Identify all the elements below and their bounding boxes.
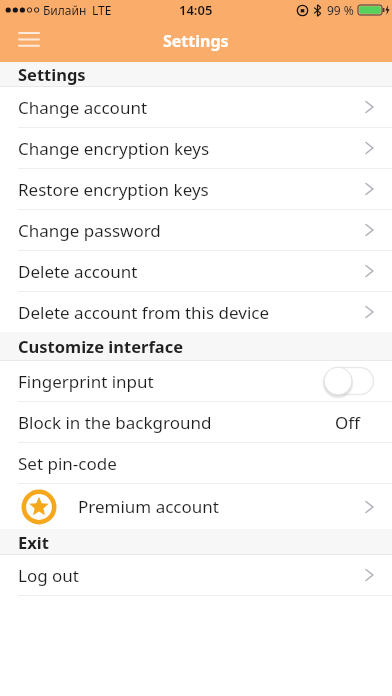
staticText: Fingerprint input [18,370,154,393]
button[interactable]: Change password [0,210,392,250]
button[interactable] [0,20,56,62]
staticText: Restore encryption keys [18,178,209,201]
staticText: Билайн [43,2,87,18]
button[interactable]: Change account [0,87,392,127]
button[interactable]: Log out [0,555,392,595]
button[interactable]: Restore encryption keys [0,169,392,209]
staticText: 14:05 [179,1,213,19]
staticText: Settings [18,63,86,85]
staticText: Customize interface [18,335,184,357]
button[interactable]: Premium account [0,484,392,529]
staticText: Change account [18,96,148,119]
staticText: Set pin-code [18,452,117,475]
staticText: Delete account [18,260,138,283]
staticText: 99 % [327,2,354,18]
staticText: Settings [163,30,229,52]
staticText: Change encryption keys [18,137,210,160]
staticText: Delete account from this device [18,301,270,324]
staticText: Exit [18,531,49,553]
staticText: LTE [92,2,112,18]
button[interactable]: Fingerprint input [0,361,392,401]
staticText: Log out [18,564,79,587]
button[interactable]: Delete account [0,251,392,291]
staticText: Change password [18,219,161,242]
button[interactable]: Block in the background [0,402,392,442]
button[interactable]: Set pin-code [0,443,392,483]
button[interactable]: Delete account from this device [0,292,392,332]
button[interactable]: Change encryption keys [0,128,392,168]
staticText: Premium account [78,495,219,518]
button[interactable] [323,366,375,397]
staticText: Block in the background [18,411,212,434]
staticText: Off [335,411,360,434]
